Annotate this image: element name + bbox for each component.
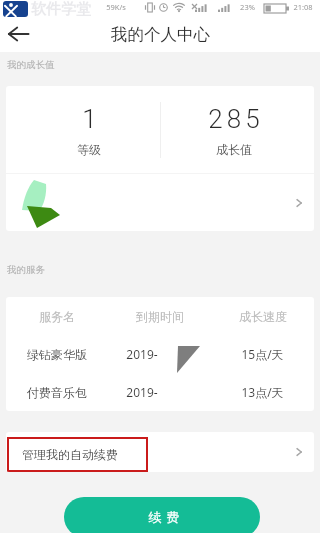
- staticText: 2019-: [126, 346, 158, 362]
- staticText: 我的成长值: [7, 59, 55, 71]
- staticText: 成长速度: [239, 309, 287, 324]
- staticText: 绿钻豪华版: [27, 347, 87, 362]
- button[interactable]: [6, 174, 314, 231]
- staticText: 付费音乐包: [27, 385, 87, 400]
- staticText: 管理我的自动续费: [22, 447, 118, 462]
- staticText: 1: [82, 104, 101, 134]
- staticText: 服务名: [39, 309, 75, 324]
- staticText: 到期时间: [136, 309, 184, 324]
- staticText: 续费: [146, 509, 182, 525]
- staticText: 285: [208, 104, 264, 134]
- button[interactable]: Back: [0, 16, 36, 52]
- button[interactable]: 管理我的自动续费: [6, 432, 314, 472]
- staticText: 成长值: [216, 142, 252, 157]
- staticText: 15点/天: [241, 346, 284, 362]
- staticText: 我的服务: [7, 264, 45, 276]
- staticText: 等级: [77, 142, 101, 157]
- staticText: 软件学堂: [31, 0, 91, 16]
- staticText: 23%: [240, 2, 255, 12]
- button[interactable]: 续费: [64, 497, 260, 533]
- staticText: 21:08: [293, 2, 313, 12]
- staticText: 2019-: [126, 384, 158, 400]
- staticText: 我的个人中心: [111, 24, 210, 45]
- staticText: 13点/天: [241, 384, 284, 400]
- staticText: 59K/s: [106, 2, 126, 12]
